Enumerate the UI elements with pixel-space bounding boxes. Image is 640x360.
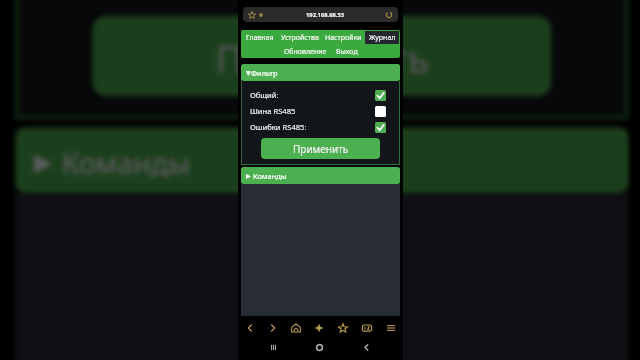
staticText: Ошибки RS485: — [250, 122, 307, 132]
button[interactable]: Шина RS485 — [250, 103, 386, 119]
button[interactable]: Обновление — [284, 47, 327, 57]
staticText: Обновление — [284, 47, 327, 57]
button[interactable]: Настройки — [325, 33, 362, 43]
staticText: Применить — [216, 31, 432, 85]
button[interactable]: Forward — [261, 318, 284, 337]
staticText: 192.168.68.53 — [306, 11, 345, 19]
button[interactable]: Home — [284, 318, 307, 337]
staticText: Журнал — [369, 33, 396, 43]
staticText: Команды — [61, 143, 193, 181]
staticText: Общий: — [250, 90, 279, 100]
staticText: Настройки — [325, 33, 362, 43]
staticText: ▶ — [246, 172, 251, 179]
button[interactable]: Главная — [246, 33, 274, 43]
button[interactable]: Bookmarks — [331, 318, 355, 337]
staticText: Выход — [336, 47, 358, 57]
button[interactable]: Menu — [379, 318, 403, 337]
staticText: ▶ — [34, 147, 54, 174]
button[interactable]: Back — [356, 337, 376, 357]
button[interactable]: Shortcuts — [307, 318, 331, 337]
button[interactable]: Ошибки RS485: — [250, 119, 386, 135]
button[interactable]: 192.168.68.53 — [243, 7, 398, 22]
staticText: Применить — [293, 142, 349, 156]
button[interactable]: Recents — [263, 337, 283, 357]
button[interactable]: ▶ — [241, 167, 400, 184]
staticText: Команды — [253, 171, 287, 181]
button[interactable]: Back — [238, 318, 261, 337]
button[interactable]: Общий: — [250, 87, 386, 103]
button[interactable]: Применить — [261, 138, 380, 159]
button[interactable]: Журнал — [365, 31, 399, 44]
staticText: ▼ — [246, 69, 251, 76]
staticText: Шина RS485 — [250, 106, 296, 116]
staticText: Устройства — [281, 33, 319, 43]
staticText: Фильтр — [251, 68, 278, 78]
button[interactable]: Выход — [336, 47, 358, 57]
button[interactable]: Tabs — [355, 318, 379, 337]
button[interactable]: ▼ — [241, 64, 400, 81]
button[interactable]: Устройства — [281, 33, 319, 43]
button[interactable]: Home — [309, 337, 329, 357]
staticText: Главная — [246, 33, 274, 43]
